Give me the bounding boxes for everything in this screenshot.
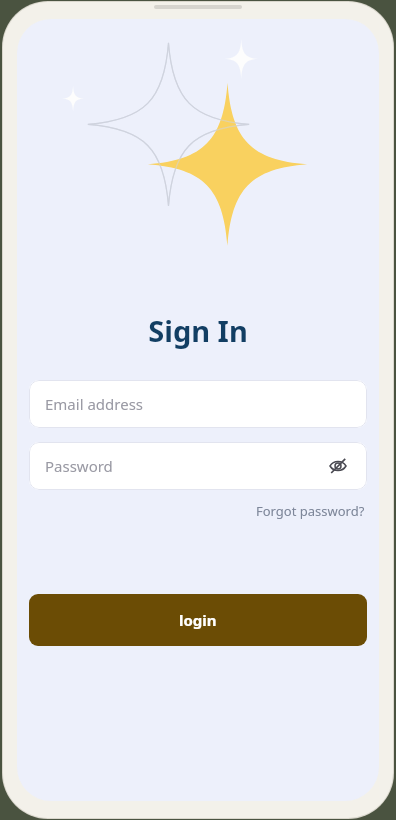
staticText: login bbox=[179, 610, 217, 630]
staticText: Password bbox=[45, 456, 113, 476]
button[interactable]: Show password bbox=[325, 453, 351, 479]
button[interactable]: Email address bbox=[29, 380, 367, 428]
button[interactable]: Password bbox=[29, 442, 367, 490]
staticText: Email address bbox=[45, 394, 144, 414]
button[interactable]: login bbox=[29, 594, 367, 646]
staticText: Sign In bbox=[29, 311, 367, 350]
button[interactable]: Forgot password? bbox=[254, 500, 367, 522]
staticText: Forgot password? bbox=[256, 502, 365, 520]
